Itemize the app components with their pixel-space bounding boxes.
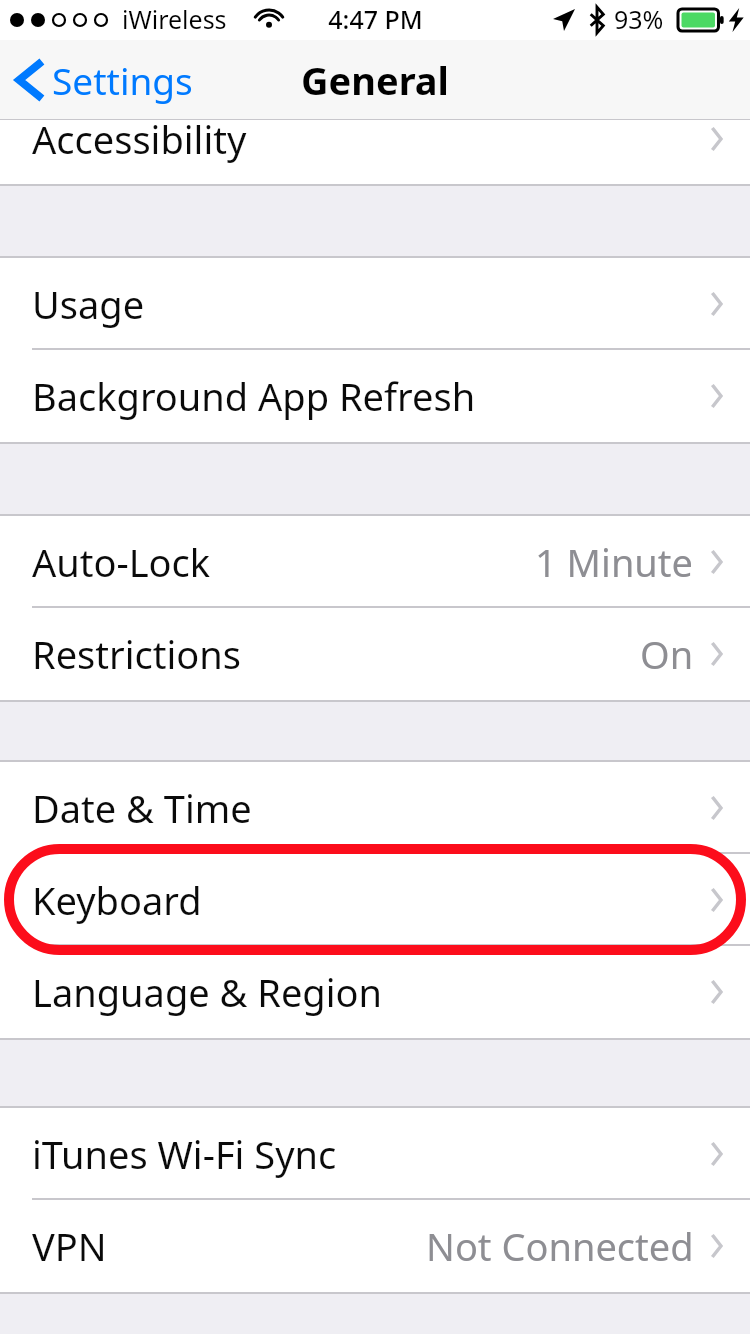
- staticText: VPN: [32, 1220, 107, 1272]
- staticText: Usage: [32, 278, 145, 330]
- staticText: Background App Refresh: [32, 370, 476, 422]
- staticText: Not Connected: [426, 1220, 694, 1272]
- button[interactable]: iTunes Wi-Fi Sync: [0, 1108, 750, 1200]
- staticText: General: [301, 54, 449, 106]
- button[interactable]: VPN: [0, 1200, 750, 1292]
- button[interactable]: Auto-Lock: [0, 516, 750, 608]
- button[interactable]: Background App Refresh: [0, 350, 750, 442]
- staticText: 93%: [614, 2, 664, 36]
- button[interactable]: Settings: [0, 40, 207, 120]
- staticText: iWireless: [122, 2, 227, 36]
- staticText: Auto-Lock: [32, 536, 211, 588]
- button[interactable]: Accessibility: [0, 120, 750, 184]
- staticText: Date & Time: [32, 782, 252, 834]
- button[interactable]: Usage: [0, 258, 750, 350]
- staticText: Accessibility: [32, 113, 247, 165]
- staticText: On: [640, 628, 694, 680]
- button[interactable]: Keyboard: [0, 854, 750, 946]
- staticText: Keyboard: [32, 874, 202, 926]
- button[interactable]: Language & Region: [0, 946, 750, 1038]
- staticText: 4:47 PM: [328, 2, 423, 36]
- staticText: Language & Region: [32, 966, 382, 1018]
- button[interactable]: Date & Time: [0, 762, 750, 854]
- staticText: Restrictions: [32, 628, 241, 680]
- staticText: iTunes Wi-Fi Sync: [32, 1128, 337, 1180]
- button[interactable]: Restrictions: [0, 608, 750, 700]
- staticText: Settings: [52, 55, 193, 105]
- staticText: 1 Minute: [535, 536, 694, 588]
